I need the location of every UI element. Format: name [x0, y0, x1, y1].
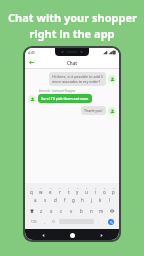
- button[interactable]: m: [96, 205, 106, 216]
- staticText: Hi there, is it possible to add 3 more a…: [52, 74, 103, 84]
- button[interactable]: Hi there, is it possible to add 3 more a…: [28, 72, 116, 86]
- staticText: m: [99, 208, 104, 214]
- staticText: c: [60, 208, 63, 214]
- staticText: Chat with your shopper: [8, 10, 137, 25]
- staticText: 7: [86, 186, 88, 189]
- staticText: w: [39, 189, 43, 195]
- button[interactable]: Back: [39, 231, 47, 239]
- staticText: s: [44, 197, 47, 203]
- button[interactable]: 1: [26, 185, 36, 195]
- button[interactable]: Sure! I'll pick them out now.: [28, 94, 116, 103]
- staticText: right in the app: [29, 26, 115, 41]
- staticText: g: [72, 197, 75, 203]
- staticText: n: [90, 208, 93, 214]
- button[interactable]: f: [60, 195, 69, 205]
- button[interactable]: n: [86, 205, 96, 216]
- staticText: .: [98, 219, 100, 224]
- button[interactable]: h: [78, 195, 87, 205]
- staticText: h: [81, 197, 84, 203]
- button[interactable]: Backspace: [106, 205, 118, 216]
- button[interactable]: 9: [100, 185, 109, 195]
- staticText: ?123: [31, 220, 37, 224]
- staticText: j: [91, 197, 93, 203]
- button[interactable]: j: [87, 195, 96, 205]
- staticText: 1: [31, 186, 33, 189]
- button[interactable]: 5: [64, 185, 73, 195]
- staticText: d: [54, 197, 57, 203]
- staticText: y: [76, 189, 79, 195]
- button[interactable]: z: [37, 205, 46, 216]
- staticText: l: [109, 197, 111, 203]
- staticText: Amanda · Instacart Shopper: [39, 89, 76, 93]
- staticText: 4: [59, 186, 61, 189]
- staticText: z: [40, 208, 43, 214]
- button[interactable]: Thank you!: [28, 106, 116, 115]
- button[interactable]: 3: [46, 185, 55, 195]
- button[interactable]: 2: [36, 185, 46, 195]
- button[interactable]: g: [69, 195, 78, 205]
- staticText: b: [80, 208, 83, 214]
- button[interactable]: 6: [73, 185, 82, 195]
- button[interactable]: v: [66, 205, 76, 216]
- button[interactable]: Home: [68, 231, 76, 239]
- staticText: 0: [113, 186, 115, 189]
- button[interactable]: Back: [27, 58, 36, 67]
- staticText: 4:45: [28, 50, 35, 55]
- staticText: f: [64, 197, 66, 203]
- staticText: t: [68, 189, 70, 195]
- staticText: k: [99, 197, 102, 203]
- staticText: o: [103, 189, 106, 195]
- staticText: 9: [104, 186, 106, 189]
- staticText: q: [30, 189, 33, 195]
- button[interactable]: 0: [109, 185, 118, 195]
- button[interactable]: l: [105, 195, 114, 205]
- staticText: a: [34, 197, 37, 203]
- button[interactable]: Emoji: [49, 216, 58, 227]
- button[interactable]: 4: [55, 185, 64, 195]
- staticText: p: [112, 189, 115, 195]
- button[interactable]: k: [96, 195, 105, 205]
- button[interactable]: x: [46, 205, 56, 216]
- staticText: ,: [44, 219, 46, 224]
- staticText: Sure! I'll pick them out now.: [41, 96, 89, 101]
- staticText: u: [85, 189, 88, 195]
- button[interactable]: 7: [82, 185, 91, 195]
- button[interactable]: Recents: [97, 231, 105, 239]
- staticText: x: [50, 208, 53, 214]
- staticText: 3: [50, 186, 52, 189]
- button[interactable]: b: [76, 205, 86, 216]
- staticText: 8: [95, 186, 97, 189]
- button[interactable]: ?123: [26, 216, 41, 227]
- button[interactable]: Shift: [26, 205, 37, 216]
- button[interactable]: a: [30, 195, 40, 205]
- staticText: Thank you!: [84, 108, 103, 113]
- staticText: 6: [77, 186, 79, 189]
- staticText: 5: [68, 186, 70, 189]
- button[interactable]: ,: [41, 216, 49, 227]
- staticText: 2: [40, 186, 42, 189]
- staticText: Chat: [67, 60, 78, 66]
- staticText: e: [49, 189, 52, 195]
- staticText: i: [95, 189, 97, 195]
- button[interactable]: c: [56, 205, 66, 216]
- staticText: r: [59, 189, 61, 195]
- button[interactable]: 8: [91, 185, 100, 195]
- button[interactable]: d: [50, 195, 60, 205]
- button[interactable]: Search: [108, 219, 114, 225]
- staticText: v: [70, 208, 73, 214]
- button[interactable]: s: [40, 195, 50, 205]
